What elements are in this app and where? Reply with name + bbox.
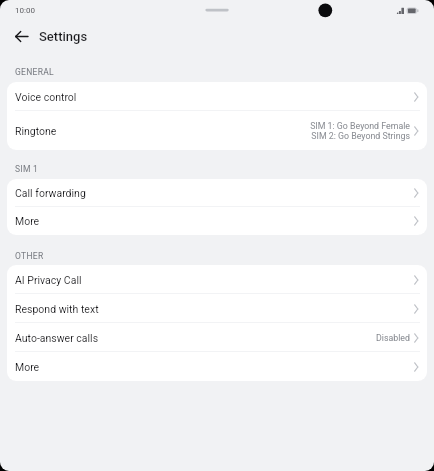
- button[interactable]: Respond with text: [7, 294, 427, 323]
- staticText: Settings: [39, 29, 88, 44]
- staticText: Call forwarding: [15, 187, 86, 199]
- staticText: 10:00: [15, 6, 35, 15]
- staticText: OTHER: [15, 251, 44, 261]
- staticText: SIM 2: Go Beyond Strings: [311, 131, 410, 141]
- staticText: AI Privacy Call: [15, 274, 82, 286]
- staticText: Disabled: [376, 333, 410, 343]
- button[interactable]: Call forwarding: [7, 179, 427, 207]
- button[interactable]: More: [7, 352, 427, 381]
- staticText: Voice control: [15, 91, 77, 103]
- staticText: Respond with text: [15, 303, 99, 315]
- button[interactable]: Back: [6, 21, 36, 51]
- button[interactable]: AI Privacy Call: [7, 265, 427, 294]
- button[interactable]: Ringtone: [7, 111, 427, 150]
- button[interactable]: Voice control: [7, 82, 427, 111]
- staticText: GENERAL: [15, 67, 54, 77]
- staticText: Auto-answer calls: [15, 332, 99, 344]
- staticText: More: [15, 215, 40, 227]
- staticText: More: [15, 361, 40, 373]
- staticText: SIM 1: Go Beyond Female: [310, 121, 410, 131]
- button[interactable]: Auto-answer calls: [7, 323, 427, 352]
- staticText: SIM 1: [15, 164, 39, 174]
- button[interactable]: More: [7, 207, 427, 235]
- staticText: Ringtone: [15, 125, 57, 137]
